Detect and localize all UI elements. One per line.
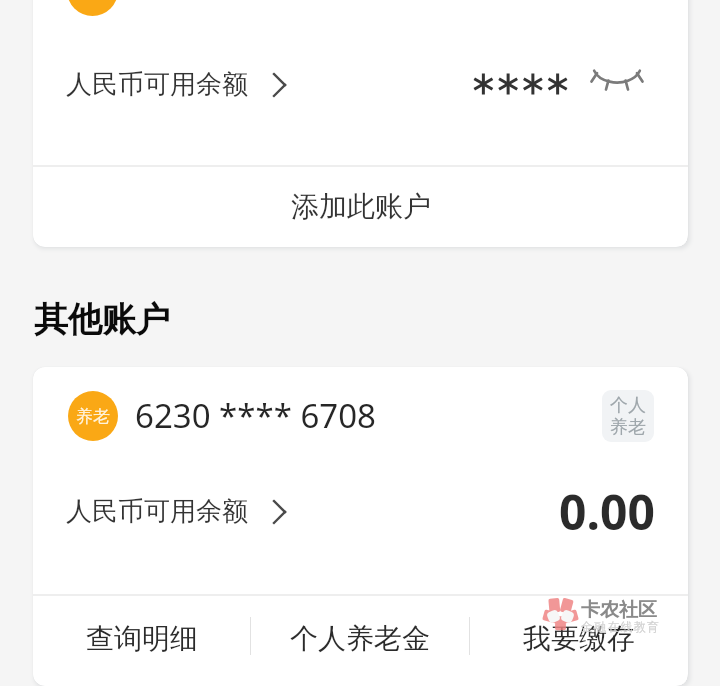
staticText: 金融在线教育: [581, 619, 661, 634]
button[interactable]: 人民币可用余额: [66, 495, 286, 528]
button[interactable]: 人民币可用余额: [66, 68, 286, 101]
staticText: 养老: [76, 406, 110, 427]
staticText: 添加此账户: [291, 189, 431, 224]
staticText: 我要缴存: [523, 621, 635, 656]
staticText: 个人 养老: [610, 394, 646, 438]
button[interactable]: 添加此账户: [33, 165, 688, 247]
staticText: 0.00: [559, 479, 655, 544]
button[interactable]: 我要缴存: [470, 596, 688, 686]
staticText: 查询明细: [86, 621, 198, 656]
staticText: 卡农社区: [581, 598, 657, 622]
staticText: 个人养老金: [290, 621, 430, 656]
button[interactable]: 查询明细: [33, 596, 250, 686]
staticText: 6230 **** 6708: [135, 393, 376, 438]
staticText: 人民币可用余额: [66, 68, 248, 101]
staticText: 其他账户: [34, 298, 170, 341]
staticText: 人民币可用余额: [66, 495, 248, 528]
button[interactable]: Show balance: [590, 69, 644, 99]
button[interactable]: 个人养老金: [251, 596, 469, 686]
button[interactable]: 养老: [33, 367, 688, 464]
